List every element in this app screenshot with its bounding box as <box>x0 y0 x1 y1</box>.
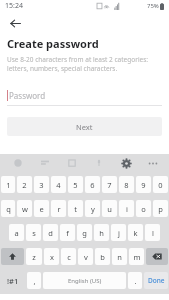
button[interactable]: k <box>128 224 143 241</box>
button[interactable]: 3 <box>34 176 49 193</box>
button[interactable]: r <box>51 200 66 217</box>
button[interactable]: s <box>26 224 41 241</box>
button[interactable]: 5 <box>68 176 83 193</box>
button[interactable]: Backspace <box>146 248 168 265</box>
button[interactable]: i <box>119 200 134 217</box>
staticText: d <box>48 228 53 238</box>
staticText: 9 <box>141 180 146 190</box>
button[interactable]: j <box>111 224 126 241</box>
staticText: z <box>32 252 36 262</box>
button[interactable]: y <box>85 200 100 217</box>
staticText: l <box>152 228 154 238</box>
button[interactable]: Shift <box>1 248 24 265</box>
staticText: 15:24 <box>5 1 23 11</box>
staticText: Use 8-20 characters from at least 2 cate… <box>7 55 162 73</box>
staticText: j <box>118 228 120 238</box>
button[interactable]: 9 <box>136 176 151 193</box>
button[interactable]: Settings <box>118 155 134 171</box>
staticText: k <box>133 228 138 238</box>
button[interactable]: a <box>9 224 24 241</box>
staticText: Done <box>148 276 165 285</box>
staticText: g <box>82 228 87 238</box>
staticText: u <box>107 204 112 214</box>
staticText: 0 <box>158 180 163 190</box>
button[interactable]: 6 <box>85 176 100 193</box>
button[interactable]: p <box>153 200 168 217</box>
button[interactable]: n <box>112 248 127 265</box>
staticText: q <box>6 204 11 214</box>
staticText: y <box>91 204 95 214</box>
staticText: 4 <box>56 180 61 190</box>
staticText: x <box>50 252 54 262</box>
button[interactable]: 2 <box>17 176 32 193</box>
staticText: 1 <box>6 180 11 190</box>
button[interactable]: . <box>128 272 142 289</box>
button[interactable]: 8 <box>119 176 134 193</box>
staticText: . <box>134 276 137 286</box>
button[interactable]: Back <box>4 12 26 34</box>
button[interactable]: l <box>145 224 160 241</box>
staticText: English (US) <box>68 277 102 285</box>
button[interactable]: q <box>1 200 15 217</box>
button[interactable]: Done <box>144 272 168 289</box>
staticText: 8 <box>124 180 129 190</box>
staticText: w <box>22 204 28 214</box>
button[interactable]: v <box>78 248 93 265</box>
button[interactable]: Password <box>7 85 162 105</box>
button[interactable]: t <box>68 200 83 217</box>
staticText: f <box>66 228 69 238</box>
button[interactable]: m <box>129 248 144 265</box>
staticText: p <box>158 204 163 214</box>
button[interactable]: Voice input <box>91 155 107 171</box>
button[interactable]: x <box>44 248 59 265</box>
button[interactable]: 7 <box>102 176 117 193</box>
staticText: h <box>99 228 104 238</box>
button[interactable]: English (US) <box>43 272 126 289</box>
button[interactable]: u <box>102 200 117 217</box>
staticText: , <box>33 276 36 286</box>
staticText: 6 <box>90 180 95 190</box>
staticText: 3 <box>39 180 44 190</box>
button[interactable]: , <box>27 272 41 289</box>
button[interactable]: Next <box>7 117 162 136</box>
staticText: n <box>117 252 122 262</box>
button[interactable]: Emoji <box>10 155 26 171</box>
button[interactable]: GIF <box>37 155 53 171</box>
staticText: v <box>84 252 88 262</box>
button[interactable]: c <box>61 248 76 265</box>
button[interactable]: d <box>43 224 58 241</box>
button[interactable]: Clipboard <box>64 155 80 171</box>
staticText: o <box>141 204 146 214</box>
staticText: Create password <box>7 36 99 51</box>
staticText: Next <box>76 122 93 132</box>
button[interactable]: o <box>136 200 151 217</box>
staticText: 5 <box>73 180 78 190</box>
staticText: 2 <box>22 180 27 190</box>
button[interactable]: 0 <box>153 176 168 193</box>
button[interactable]: 1 <box>1 176 15 193</box>
button[interactable]: 4 <box>51 176 66 193</box>
staticText: i <box>126 204 128 214</box>
button[interactable]: g <box>77 224 92 241</box>
staticText: b <box>100 252 105 262</box>
staticText: c <box>67 252 71 262</box>
staticText: !#1 <box>7 276 19 286</box>
button[interactable]: z <box>26 248 42 265</box>
staticText: m <box>133 252 141 262</box>
button[interactable]: !#1 <box>1 272 25 289</box>
staticText: 75% <box>147 2 159 10</box>
staticText: t <box>74 204 77 214</box>
button[interactable]: b <box>95 248 110 265</box>
button[interactable]: f <box>60 224 75 241</box>
staticText: e <box>39 204 44 214</box>
staticText: r <box>57 204 61 214</box>
staticText: a <box>14 228 19 238</box>
button[interactable]: h <box>94 224 109 241</box>
button[interactable]: More options <box>145 155 161 171</box>
staticText: s <box>32 228 36 238</box>
staticText: 7 <box>107 180 112 190</box>
button[interactable]: e <box>34 200 49 217</box>
staticText: Password <box>9 90 46 101</box>
button[interactable]: w <box>17 200 32 217</box>
